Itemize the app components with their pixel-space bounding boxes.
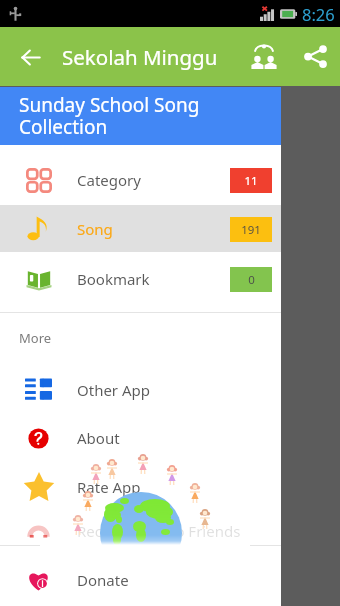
staticText: Rate App <box>77 477 141 497</box>
button[interactable]: Category <box>0 156 281 204</box>
button[interactable]: Share <box>292 32 338 82</box>
staticText: Sunday School Song Collection <box>19 92 200 140</box>
staticText: 191 <box>241 222 261 238</box>
staticText: 11 <box>244 173 258 189</box>
staticText: Category <box>77 170 141 190</box>
button[interactable]: Navigate up <box>10 37 50 77</box>
button[interactable]: Contributors <box>242 32 286 82</box>
button[interactable]: Other App <box>0 366 281 414</box>
staticText: 8:26 <box>302 3 335 25</box>
staticText: Donate <box>77 570 129 590</box>
staticText: Song <box>77 219 113 239</box>
button[interactable]: Song <box>0 205 281 253</box>
button[interactable]: Donate <box>0 556 281 604</box>
staticText: About <box>77 428 120 448</box>
button[interactable]: Rate App <box>0 463 281 511</box>
button[interactable]: Recommend to Friends <box>0 507 281 555</box>
staticText: Bookmark <box>77 269 150 289</box>
staticText: Other App <box>77 380 150 400</box>
button[interactable]: About <box>0 414 281 462</box>
staticText: More <box>19 329 52 347</box>
staticText: Sekolah Minggu <box>62 43 218 71</box>
staticText: 0 <box>248 272 255 288</box>
button[interactable]: Bookmark <box>0 255 281 303</box>
staticText: Recommend to Friends <box>77 521 241 541</box>
